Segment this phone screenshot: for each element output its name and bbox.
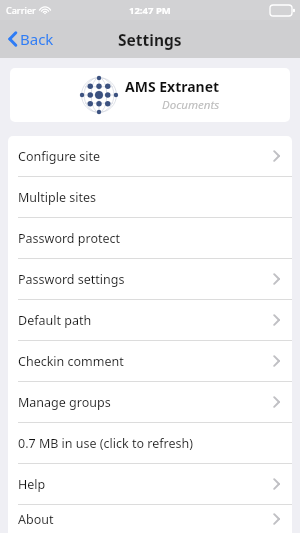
button[interactable]: Password protect (8, 218, 292, 258)
button[interactable]: About (8, 505, 292, 533)
button[interactable]: Manage groups (8, 382, 292, 422)
staticText: AMS Extranet (125, 77, 220, 96)
staticText: Password protect (18, 230, 121, 247)
button[interactable]: AMS Extranet (10, 68, 290, 122)
staticText: 12:47 PM (129, 4, 171, 17)
button[interactable]: Password settings (8, 259, 292, 299)
button[interactable]: Back (0, 22, 62, 56)
staticText: Manage groups (18, 394, 111, 411)
staticText: Multiple sites (18, 189, 97, 206)
staticText: About (18, 511, 54, 528)
staticText: Settings (118, 29, 182, 50)
button[interactable]: Default path (8, 300, 292, 340)
button[interactable]: 0.7 MB in use (click to refresh) (8, 423, 292, 463)
button[interactable]: Help (8, 464, 292, 504)
button[interactable]: Configure site (8, 136, 292, 176)
staticText: 0.7 MB in use (click to refresh) (18, 435, 193, 452)
button[interactable]: Multiple sites (8, 177, 292, 217)
staticText: Back (20, 29, 54, 49)
staticText: Documents (162, 97, 220, 113)
staticText: Default path (18, 312, 92, 329)
staticText: Password settings (18, 271, 125, 288)
staticText: Help (18, 476, 46, 493)
staticText: Carrier (6, 4, 36, 16)
button[interactable]: Checkin comment (8, 341, 292, 381)
staticText: Configure site (18, 148, 101, 165)
staticText: Checkin comment (18, 353, 124, 370)
